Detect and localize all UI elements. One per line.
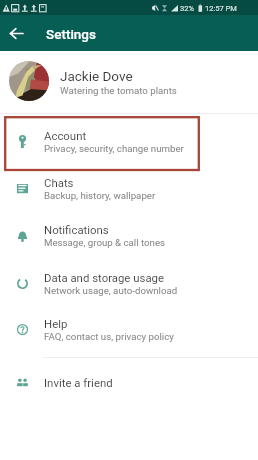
- button[interactable]: Notifications: [0, 207, 258, 255]
- button[interactable]: Jackie Dove: [0, 51, 258, 113]
- staticText: Invite a friend: [44, 376, 113, 389]
- staticText: FAQ, contact us, privacy policy: [44, 331, 174, 342]
- staticText: Notifications: [44, 223, 109, 236]
- staticText: Message, group & call tones: [44, 237, 166, 248]
- staticText: Backup, history, wallpaper: [44, 190, 156, 201]
- button[interactable]: Account: [0, 113, 258, 161]
- button[interactable]: Back: [6, 23, 26, 43]
- staticText: Watering the tomato plants: [60, 85, 177, 96]
- button[interactable]: Chats: [0, 160, 258, 208]
- staticText: Chats: [44, 176, 74, 189]
- staticText: Privacy, security, change number: [44, 143, 184, 154]
- staticText: 32%: [180, 4, 194, 13]
- staticText: Help: [44, 317, 68, 330]
- button[interactable]: Help: [0, 301, 258, 349]
- button[interactable]: Data and storage usage: [0, 255, 258, 303]
- staticText: Account: [44, 129, 87, 142]
- staticText: 12:57 PM: [205, 4, 237, 13]
- button[interactable]: Invite a friend: [0, 358, 258, 406]
- staticText: Network usage, auto-download: [44, 285, 178, 296]
- staticText: Data and storage usage: [44, 271, 165, 284]
- staticText: Settings: [46, 26, 96, 42]
- staticText: Jackie Dove: [60, 68, 133, 84]
